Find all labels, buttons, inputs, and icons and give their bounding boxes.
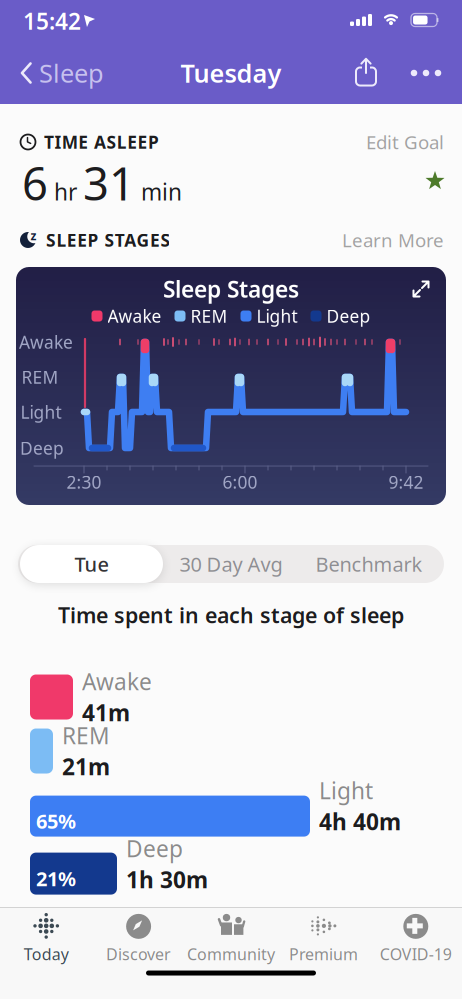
- staticText: 21m: [62, 751, 110, 782]
- button[interactable]: Sleep: [16, 51, 108, 95]
- staticText: Deep: [126, 833, 183, 863]
- staticText: SLEEP STAGES: [46, 228, 170, 251]
- staticText: 6:00: [222, 470, 257, 493]
- staticText: 30 Day Avg: [179, 551, 282, 577]
- staticText: Awake: [107, 304, 161, 327]
- staticText: z: [30, 227, 36, 243]
- staticText: Premium: [289, 943, 358, 965]
- staticText: REM: [62, 720, 110, 750]
- button[interactable]: [412, 280, 430, 298]
- staticText: TIME ASLEEP: [44, 130, 159, 153]
- staticText: Edit Goal: [366, 130, 444, 154]
- staticText: 65%: [36, 808, 76, 834]
- staticText: Benchmark: [315, 551, 422, 577]
- button[interactable]: [404, 51, 448, 95]
- staticText: Tuesday: [180, 56, 281, 90]
- staticText: min: [141, 177, 182, 207]
- button[interactable]: Edit Goal: [366, 130, 444, 154]
- staticText: Discover: [106, 943, 171, 965]
- staticText: Sleep Stages: [163, 274, 299, 304]
- staticText: Light: [319, 775, 373, 805]
- staticText: Light: [20, 400, 61, 423]
- button[interactable]: Tue: [20, 545, 163, 583]
- staticText: Light: [256, 304, 297, 327]
- staticText: hr: [54, 177, 77, 207]
- button[interactable]: Today: [0, 914, 92, 964]
- staticText: Tue: [74, 551, 108, 577]
- staticText: 31: [83, 153, 135, 213]
- staticText: 15:42: [23, 6, 81, 36]
- staticText: 9:42: [388, 470, 423, 493]
- button[interactable]: COVID-19: [370, 914, 462, 964]
- staticText: REM: [190, 304, 227, 327]
- button[interactable]: [353, 57, 379, 87]
- staticText: 1h 30m: [126, 864, 208, 895]
- staticText: Awake: [19, 330, 73, 353]
- staticText: 4h 40m: [319, 806, 401, 837]
- staticText: Sleep: [39, 56, 104, 90]
- staticText: Deep: [326, 304, 370, 327]
- button[interactable]: Discover: [92, 914, 185, 964]
- staticText: Learn More: [342, 228, 444, 252]
- staticText: Today: [24, 943, 69, 965]
- button[interactable]: Benchmark: [299, 545, 439, 583]
- button[interactable]: 30 Day Avg: [161, 545, 301, 583]
- button[interactable]: Learn More: [342, 228, 444, 252]
- staticText: Community: [187, 943, 275, 965]
- staticText: Time spent in each stage of sleep: [58, 601, 404, 629]
- staticText: 21%: [36, 865, 76, 892]
- staticText: 41m: [82, 697, 130, 728]
- staticText: Awake: [82, 666, 152, 696]
- staticText: REM: [21, 365, 58, 388]
- staticText: 6: [22, 153, 48, 213]
- staticText: COVID-19: [380, 943, 452, 965]
- button[interactable]: Premium: [277, 914, 370, 964]
- button[interactable]: Community: [185, 914, 277, 964]
- staticText: Deep: [20, 436, 64, 459]
- staticText: 2:30: [66, 470, 101, 493]
